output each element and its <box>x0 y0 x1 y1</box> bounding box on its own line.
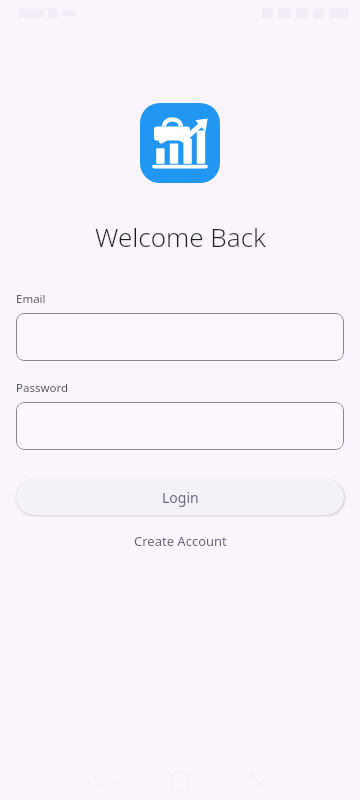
other: App logo <box>140 103 220 183</box>
button[interactable] <box>16 313 344 361</box>
staticText: Login <box>162 488 199 507</box>
staticText: Password <box>16 380 69 396</box>
button[interactable] <box>16 402 344 450</box>
staticText: Email <box>16 291 46 307</box>
staticText: Welcome Back <box>95 219 266 254</box>
button[interactable]: Login <box>16 479 344 515</box>
button[interactable]: Create Account <box>16 527 344 555</box>
staticText: Create Account <box>134 532 227 550</box>
